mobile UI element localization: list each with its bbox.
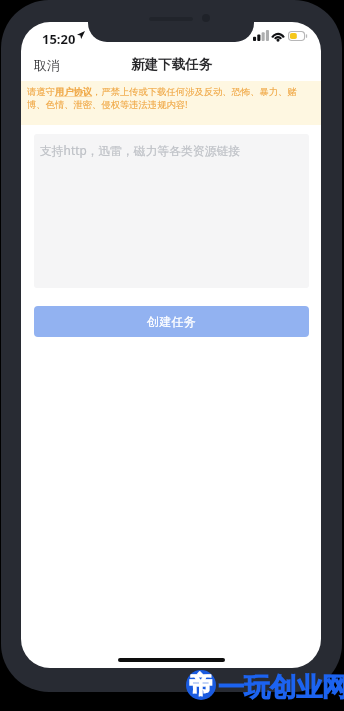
button[interactable]: 创建任务 [34,306,309,337]
staticText: 支持http，迅雷，磁力等各类资源链接 [40,142,241,158]
staticText: 15:20 [42,30,76,48]
button[interactable]: 取消 [21,51,73,79]
staticText: 取消 [34,57,60,73]
staticText: 请遵守用户协议，严禁上传或下载任何涉及反动、恐怖、暴力、赌博、色情、泄密、侵权等… [27,86,305,111]
staticText: 帝 [189,670,213,700]
staticText: 创建任务 [147,314,196,329]
button[interactable]: 支持http，迅雷，磁力等各类资源链接 [34,134,309,288]
staticText: 新建下载任务 [131,56,212,73]
staticText: 一玩创业网 [218,671,344,704]
